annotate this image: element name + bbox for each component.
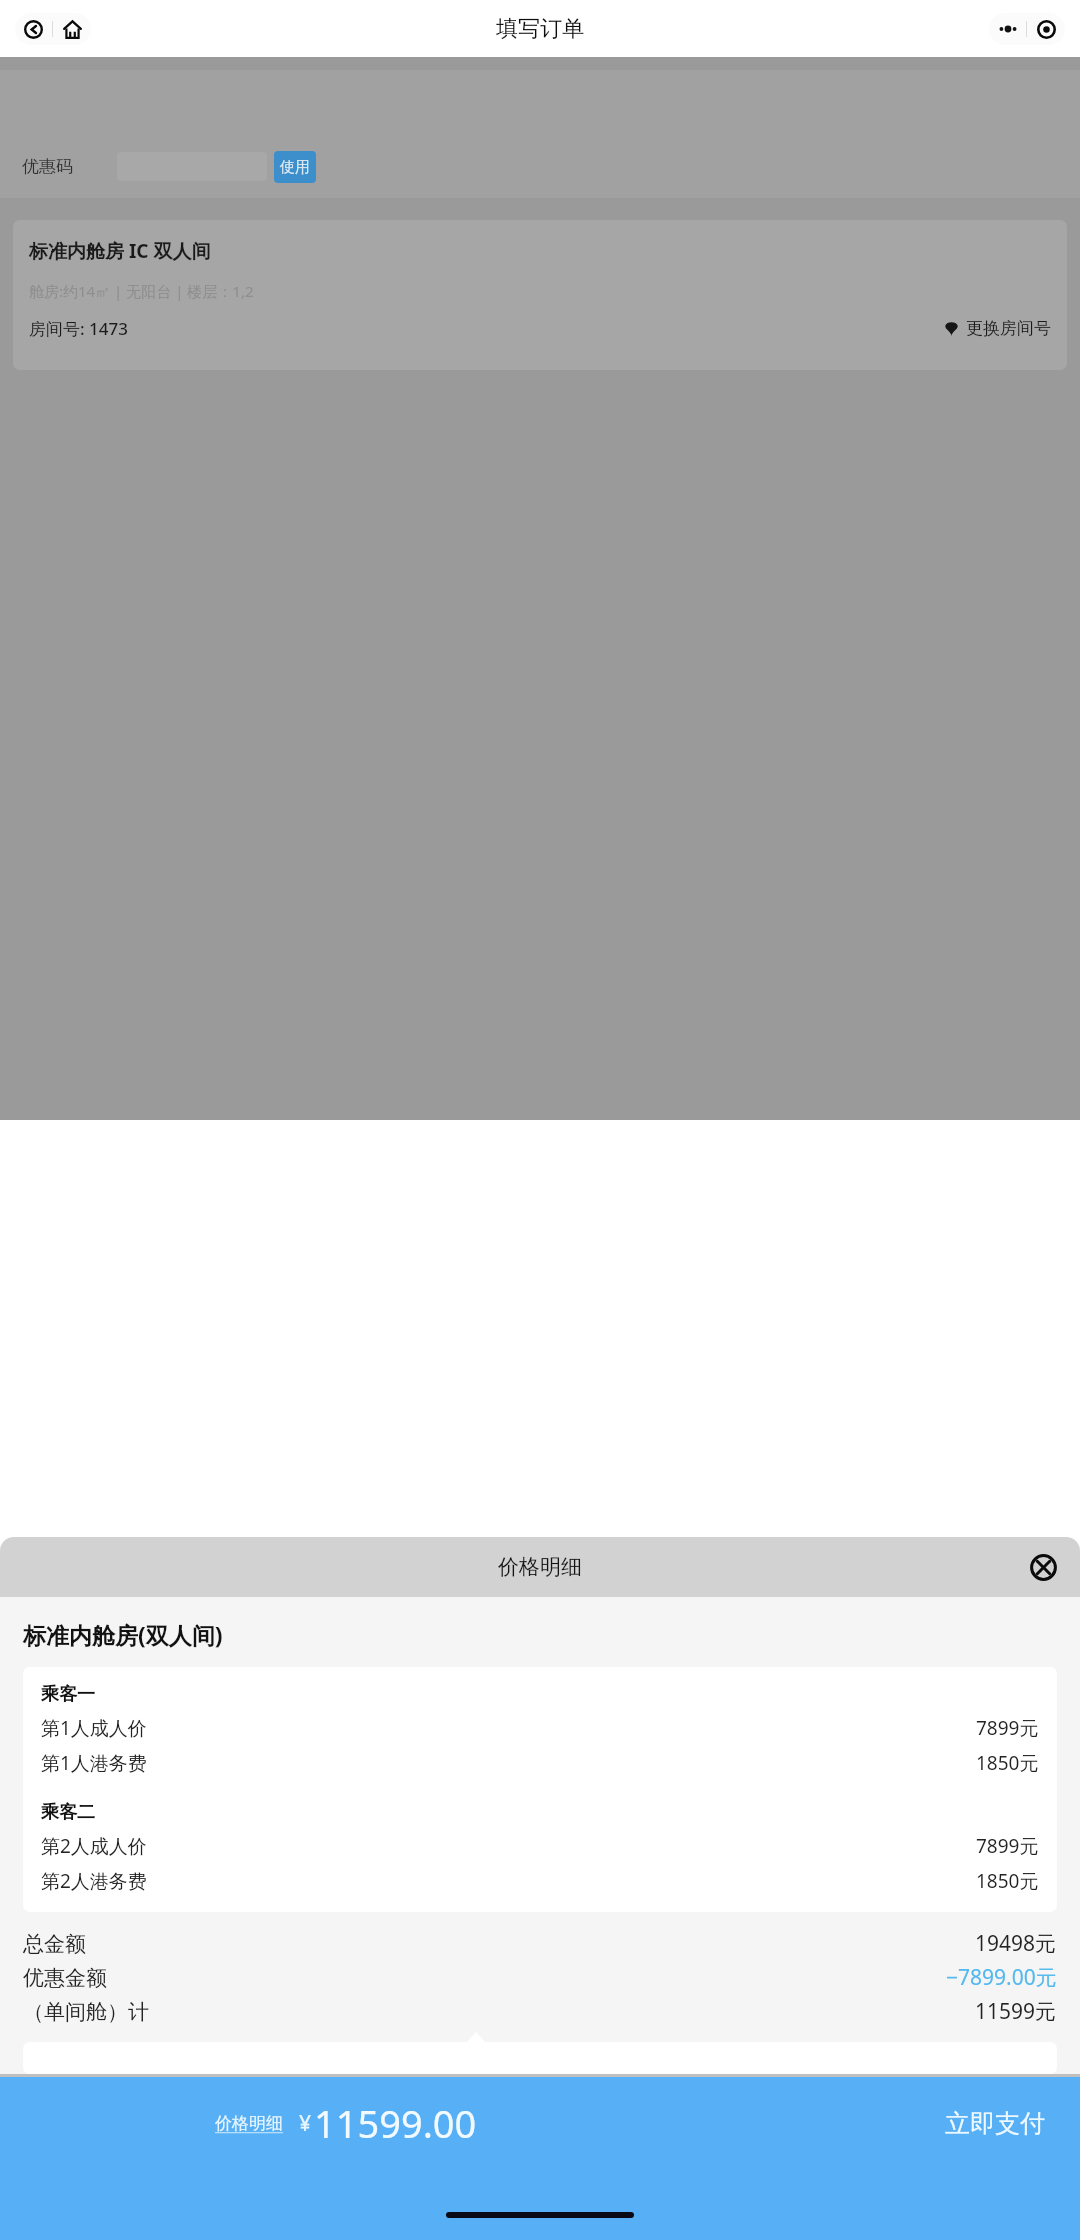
staticText: ¥ — [299, 2109, 312, 2138]
staticText: 1850元 — [976, 1868, 1039, 1894]
button[interactable]: 使用 — [274, 151, 316, 183]
staticText: 价格明细 — [498, 1554, 582, 1580]
staticText: 填写订单 — [496, 15, 584, 43]
staticText: 11599元 — [975, 1997, 1057, 2026]
staticText: （单间舱）计 — [23, 1999, 149, 2025]
staticText: 乘客二 — [41, 1801, 95, 1824]
staticText: 标准内舱房 IC 双人间 — [29, 238, 211, 264]
staticText: 优惠金额 — [23, 1965, 107, 1991]
staticText: 更换房间号 — [966, 318, 1051, 339]
staticText: 房间号: 1473 — [29, 317, 128, 340]
staticText: 第1人成人价 — [41, 1715, 147, 1741]
staticText: 标准内舱房(双人间) — [23, 1619, 223, 1650]
staticText: 使用 — [280, 158, 310, 177]
staticText: 7899元 — [976, 1715, 1039, 1741]
button[interactable]: Home — [53, 13, 91, 45]
staticText: 乘客一 — [41, 1683, 95, 1706]
staticText: 第2人港务费 — [41, 1868, 147, 1894]
staticText: 优惠码 — [22, 156, 73, 177]
staticText: 7899元 — [976, 1833, 1039, 1859]
button[interactable]: Close mini program — [1027, 13, 1065, 45]
staticText: 第1人港务费 — [41, 1750, 147, 1776]
button[interactable]: 更换房间号 — [943, 318, 1051, 339]
button[interactable]: 价格明细 — [215, 2113, 283, 2134]
button[interactable]: 立即支付 — [945, 2108, 1045, 2139]
button[interactable]: More options — [989, 13, 1026, 45]
staticText: 立即支付 — [945, 2108, 1045, 2139]
staticText: 总金额 — [23, 1931, 86, 1957]
staticText: 11599.00 — [314, 2097, 477, 2149]
staticText: −7899.00元 — [946, 1963, 1057, 1992]
staticText: 舱房:约14㎡ | 无阳台 | 楼层：1,2 — [29, 281, 254, 301]
button[interactable]: Back — [15, 13, 52, 45]
staticText: 第2人成人价 — [41, 1833, 147, 1859]
staticText: 1850元 — [976, 1750, 1039, 1776]
staticText: 19498元 — [975, 1929, 1057, 1958]
button[interactable]: Close — [1024, 1548, 1062, 1586]
